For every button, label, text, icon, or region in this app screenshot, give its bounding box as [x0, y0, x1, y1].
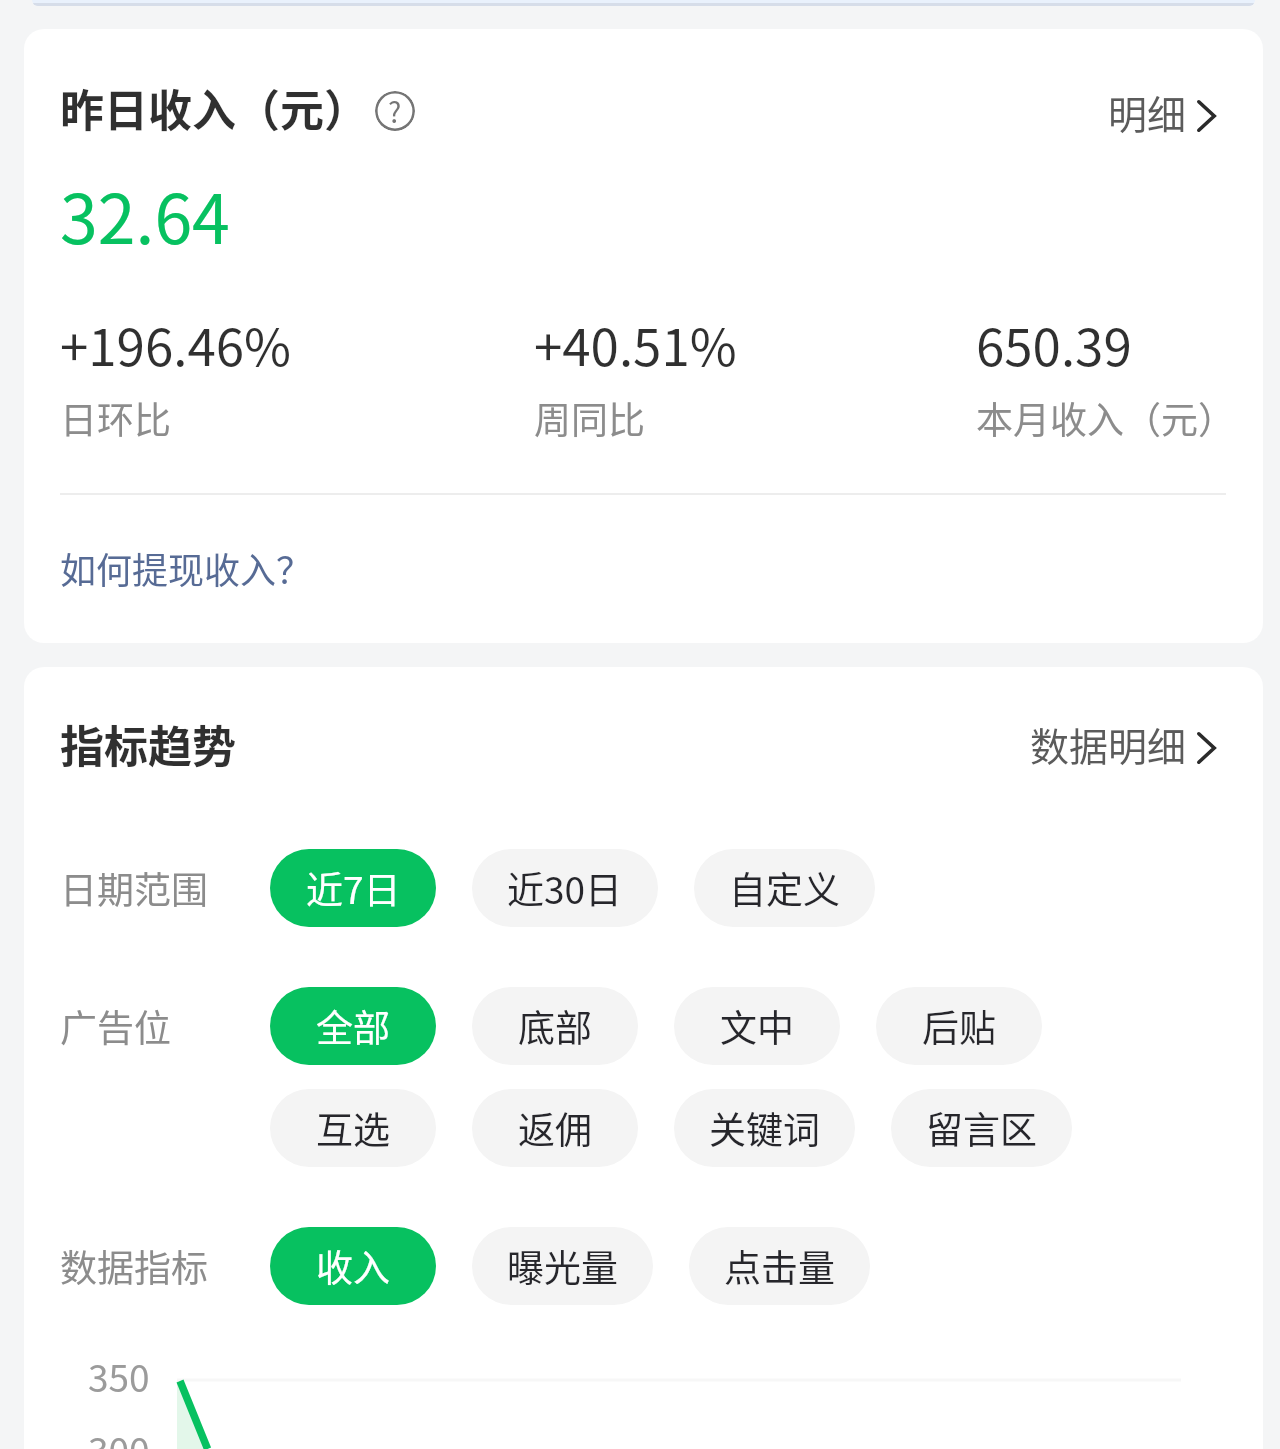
staticText: 点击量: [724, 1239, 835, 1293]
button[interactable]: 底部: [472, 987, 638, 1065]
staticText: +196.46%: [60, 307, 291, 381]
staticText: 650.39: [976, 307, 1132, 381]
button[interactable]: 全部: [270, 987, 436, 1065]
button[interactable]: 如何提现收入？: [60, 542, 313, 594]
staticText: 明细: [1108, 84, 1187, 140]
button[interactable]: 收入: [270, 1227, 436, 1305]
button[interactable]: 数据明细: [1030, 716, 1226, 772]
staticText: 数据指标: [60, 1239, 208, 1293]
staticText: 广告位: [60, 999, 171, 1053]
button[interactable]: 互选: [270, 1089, 436, 1167]
staticText: 文中: [720, 999, 794, 1053]
staticText: 日环比: [60, 391, 171, 445]
staticText: 32.64: [60, 165, 230, 263]
staticText: 全部: [316, 999, 390, 1053]
button[interactable]: 点击量: [689, 1227, 870, 1305]
staticText: 指标趋势: [60, 712, 236, 776]
button[interactable]: 关键词: [674, 1089, 855, 1167]
staticText: 后贴: [922, 999, 996, 1053]
staticText: 底部: [518, 999, 592, 1053]
button[interactable]: 返佣: [472, 1089, 638, 1167]
staticText: 周同比: [534, 391, 645, 445]
staticText: 留言区: [926, 1101, 1037, 1155]
button[interactable]: 后贴: [876, 987, 1042, 1065]
staticText: 曝光量: [507, 1239, 618, 1293]
button[interactable]: 近7日: [270, 849, 436, 927]
button[interactable]: 近30日: [472, 849, 658, 927]
staticText: 近7日: [306, 861, 401, 915]
staticText: 收入: [316, 1239, 390, 1293]
staticText: 日期范围: [60, 861, 208, 915]
button[interactable]: 帮助说明: [375, 91, 415, 131]
staticText: 返佣: [518, 1101, 592, 1155]
staticText: 关键词: [709, 1101, 820, 1155]
button[interactable]: 曝光量: [472, 1227, 653, 1305]
button[interactable]: 明细: [1108, 84, 1226, 140]
staticText: 昨日收入（元）: [60, 76, 368, 140]
staticText: 数据明细: [1030, 716, 1187, 772]
staticText: 近30日: [507, 861, 623, 915]
button[interactable]: 留言区: [891, 1089, 1072, 1167]
staticText: 本月收入（元）: [976, 391, 1235, 445]
staticText: +40.51%: [534, 307, 737, 381]
button[interactable]: 文中: [674, 987, 840, 1065]
staticText: 互选: [316, 1101, 390, 1155]
staticText: 自定义: [729, 861, 840, 915]
staticText: 300: [88, 1422, 150, 1449]
staticText: ?: [388, 91, 402, 131]
staticText: 350: [88, 1349, 150, 1403]
button[interactable]: 自定义: [694, 849, 875, 927]
